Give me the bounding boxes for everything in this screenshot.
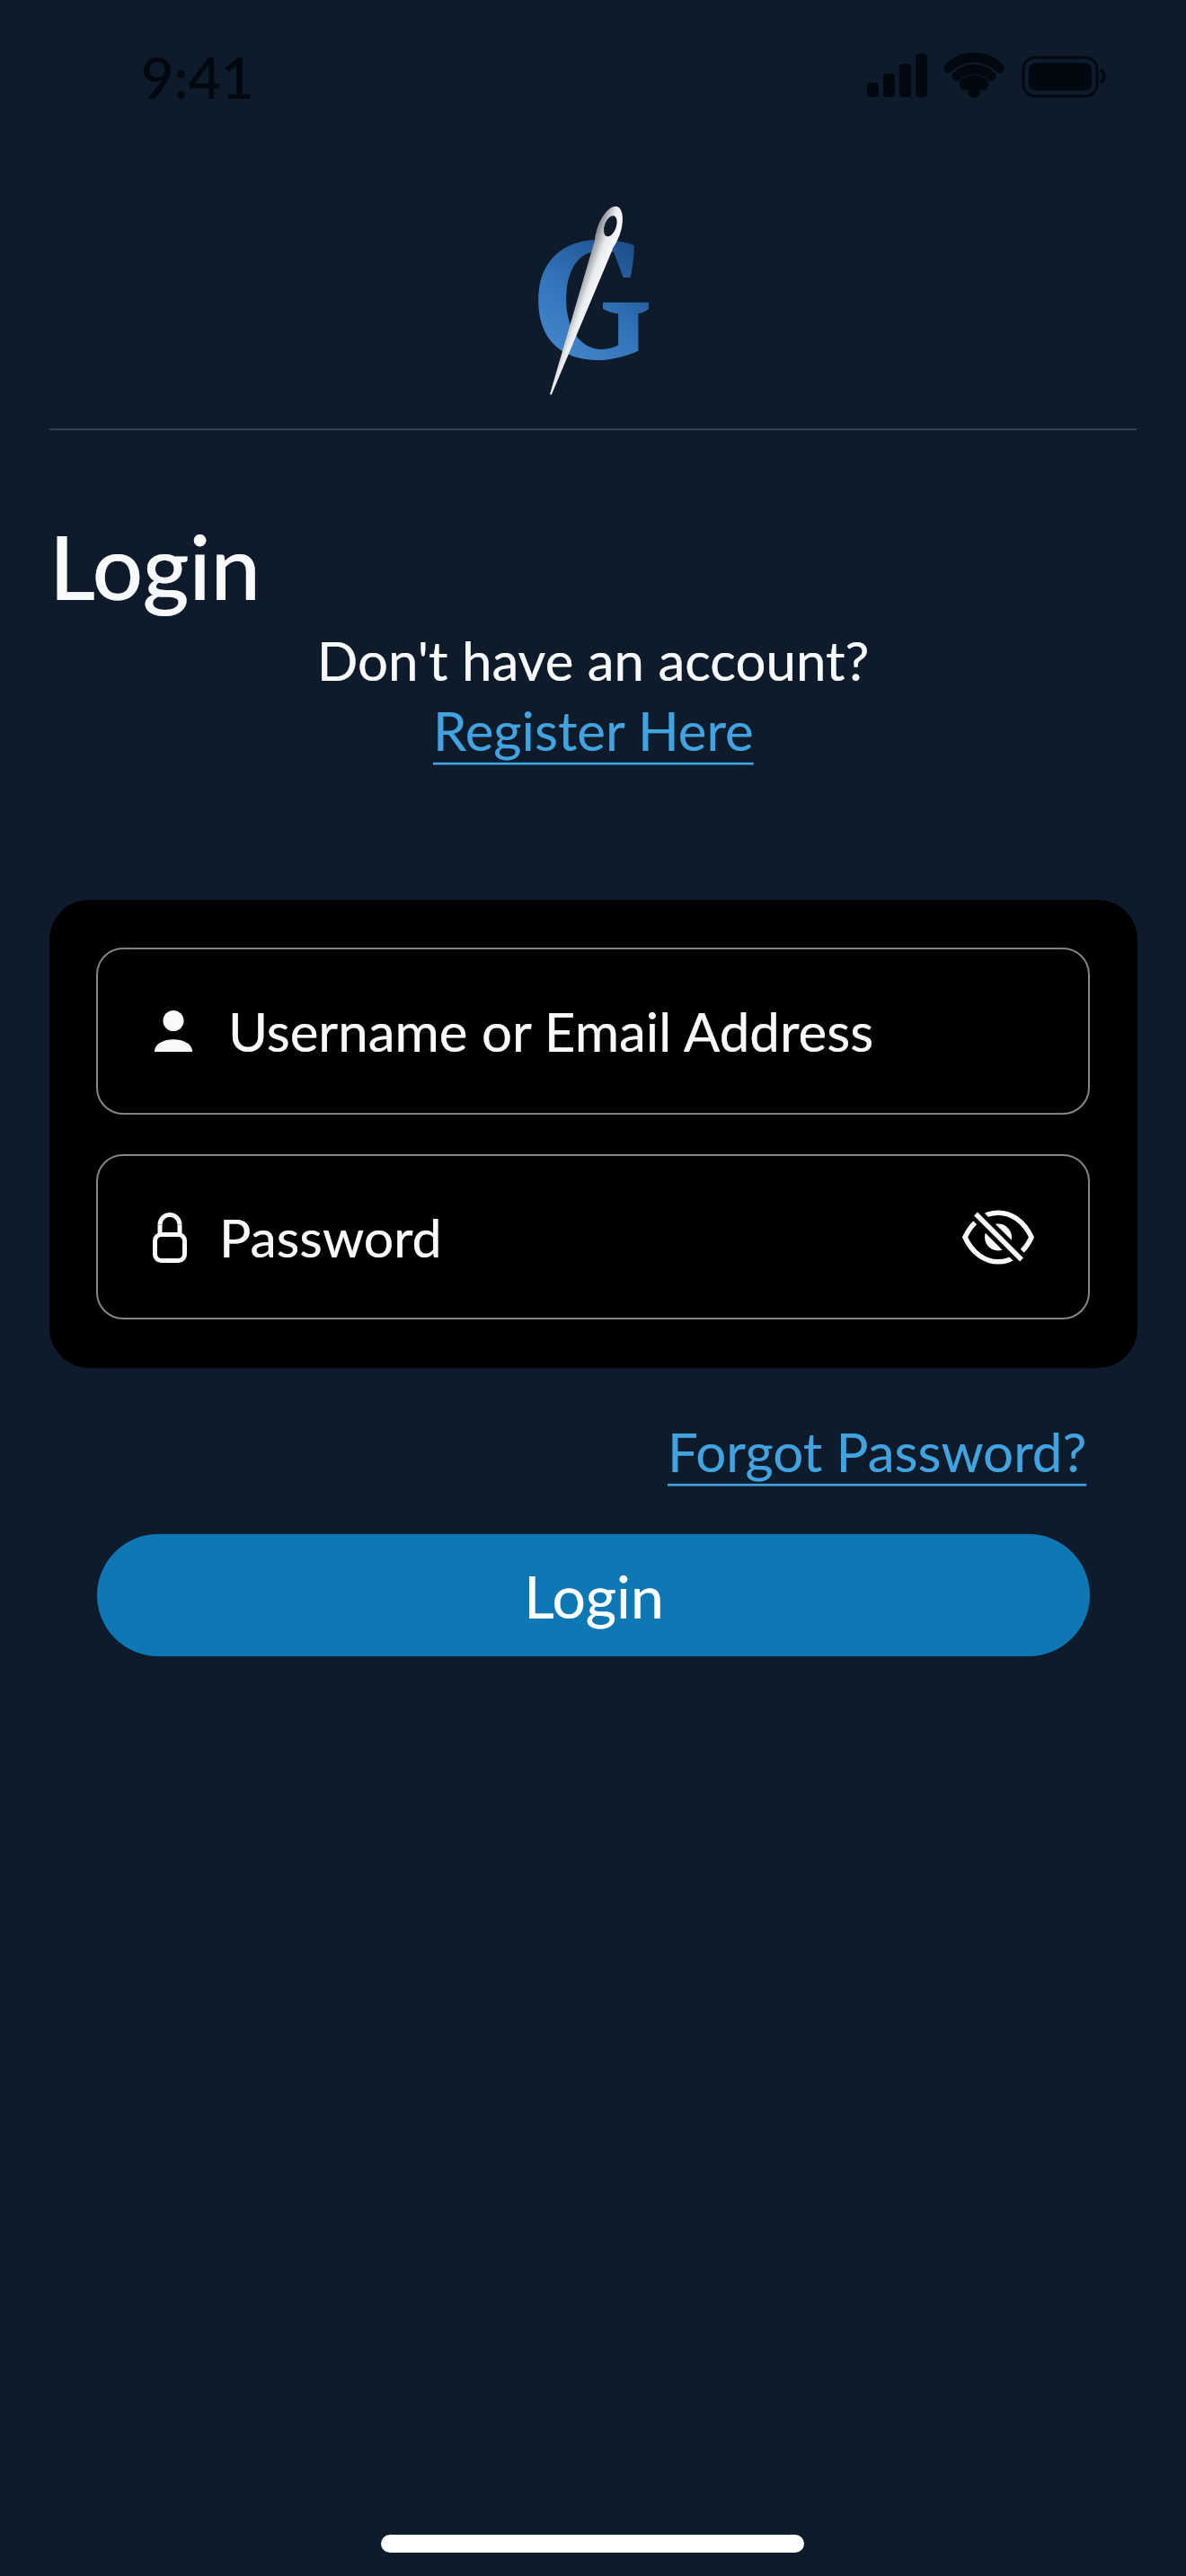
staticText: Login [524,1560,664,1631]
staticText: Password [219,1205,442,1269]
button[interactable]: Login [97,1534,1090,1656]
staticText: Don't have an account? [0,628,1186,693]
button[interactable]: Username or Email Address [96,948,1090,1115]
staticText: Username or Email Address [228,999,874,1063]
button[interactable] [960,1199,1036,1275]
button[interactable]: Register Here [433,698,754,763]
button[interactable]: Forgot Password? [668,1419,1087,1484]
staticText: 9:41 [141,43,254,111]
staticText: Login [49,512,261,619]
button[interactable]: Password [96,1154,1090,1319]
staticText: G [532,185,651,406]
